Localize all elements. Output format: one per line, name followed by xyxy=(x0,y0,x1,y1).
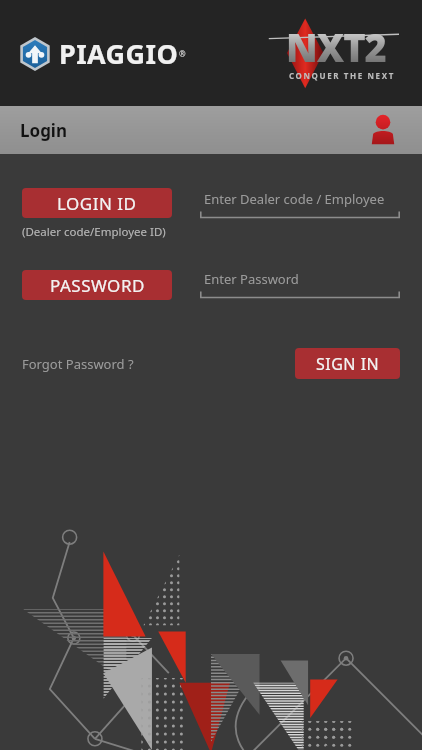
staticText: PIAGGIO xyxy=(59,35,179,72)
staticText: SIGN IN xyxy=(316,353,380,375)
staticText: (Dealer code/Employee ID) xyxy=(22,224,166,240)
staticText: CONQUER THE NEXT xyxy=(289,70,395,81)
staticText: LOGIN ID xyxy=(57,192,137,215)
button[interactable]: Enter Password xyxy=(200,268,400,302)
button[interactable]: Enter Dealer code / Employee xyxy=(200,188,400,222)
button[interactable]: Account xyxy=(366,113,400,147)
button[interactable]: LOGIN ID xyxy=(22,188,172,218)
staticText: Enter Dealer code / Employee xyxy=(204,190,385,208)
staticText: NXT2 xyxy=(286,21,386,73)
button[interactable]: SIGN IN xyxy=(295,348,400,379)
staticText: PASSWORD xyxy=(50,274,145,297)
staticText: Enter Password xyxy=(204,270,299,288)
staticText: Forgot Password ? xyxy=(22,355,134,373)
staticText: Login xyxy=(20,119,68,142)
button[interactable]: PASSWORD xyxy=(22,270,172,300)
staticText: ® xyxy=(179,48,186,59)
button[interactable]: Forgot Password ? xyxy=(22,351,134,377)
